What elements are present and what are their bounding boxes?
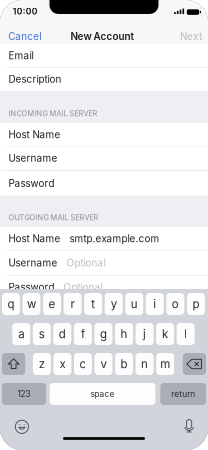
- staticText: d: [59, 327, 66, 341]
- button[interactable]: u: [125, 293, 143, 315]
- staticText: g: [100, 327, 107, 341]
- button[interactable]: h: [115, 323, 133, 345]
- staticText: New Account: [70, 30, 133, 42]
- button[interactable]: Shift: [2, 353, 25, 375]
- staticText: z: [39, 357, 45, 371]
- button[interactable]: e: [43, 293, 61, 315]
- staticText: b: [120, 357, 127, 371]
- staticText: v: [100, 357, 106, 371]
- staticText: Next: [180, 30, 202, 42]
- staticText: Username: [8, 257, 57, 269]
- button[interactable]: p: [187, 293, 205, 315]
- button[interactable]: return: [160, 383, 206, 405]
- button[interactable]: Emoji keyboard: [11, 416, 33, 438]
- staticText: Username: [8, 152, 57, 164]
- button[interactable]: Host Name: [0, 227, 208, 250]
- staticText: h: [120, 327, 127, 341]
- staticText: r: [71, 297, 75, 311]
- button[interactable]: w: [23, 293, 40, 315]
- button[interactable]: Next: [173, 25, 208, 48]
- button[interactable]: Cancel: [0, 25, 48, 48]
- staticText: smtp.example.com: [69, 233, 159, 244]
- staticText: OUTGOING MAIL SERVER: [8, 213, 98, 222]
- staticText: Password: [8, 177, 54, 189]
- staticText: k: [162, 327, 168, 341]
- staticText: m: [160, 357, 170, 371]
- staticText: Password: [8, 281, 54, 293]
- button[interactable]: o: [166, 293, 184, 315]
- staticText: i: [153, 297, 156, 311]
- button[interactable]: l: [177, 323, 195, 345]
- button[interactable]: 123: [2, 383, 46, 405]
- staticText: s: [39, 327, 45, 341]
- button[interactable]: s: [33, 323, 51, 345]
- button[interactable]: x: [53, 353, 71, 375]
- button[interactable]: q: [2, 293, 20, 315]
- button[interactable]: Host Name: [0, 123, 208, 146]
- staticText: c: [79, 357, 86, 371]
- staticText: j: [143, 327, 146, 341]
- staticText: w: [27, 297, 36, 311]
- button[interactable]: y: [105, 293, 123, 315]
- button[interactable]: m: [156, 353, 174, 375]
- button[interactable]: Dictation: [178, 416, 200, 438]
- button[interactable]: n: [136, 353, 154, 375]
- button[interactable]: f: [74, 323, 92, 345]
- staticText: Email: [8, 50, 33, 61]
- staticText: space: [90, 389, 114, 399]
- button[interactable]: j: [136, 323, 153, 345]
- staticText: Description: [8, 73, 61, 85]
- staticText: Cancel: [8, 30, 41, 42]
- button[interactable]: g: [94, 323, 112, 345]
- button[interactable]: t: [84, 293, 102, 315]
- staticText: return: [171, 389, 195, 399]
- staticText: Optional: [63, 281, 102, 293]
- button[interactable]: i: [146, 293, 164, 315]
- staticText: 10:00: [13, 6, 38, 16]
- staticText: 123: [17, 389, 30, 399]
- staticText: Host Name: [8, 233, 60, 244]
- button[interactable]: Delete: [183, 353, 206, 375]
- staticText: Host Name: [8, 129, 60, 140]
- staticText: x: [59, 357, 65, 371]
- staticText: l: [184, 327, 187, 341]
- button[interactable]: Username: [0, 250, 208, 275]
- staticText: n: [141, 357, 148, 371]
- button[interactable]: b: [115, 353, 133, 375]
- button[interactable]: Password: [0, 171, 208, 195]
- staticText: f: [81, 327, 85, 341]
- button[interactable]: k: [156, 323, 174, 345]
- button[interactable]: z: [33, 353, 51, 375]
- staticText: u: [131, 297, 138, 311]
- button[interactable]: r: [64, 293, 82, 315]
- staticText: a: [18, 327, 24, 341]
- staticText: e: [48, 297, 55, 311]
- staticText: o: [172, 297, 179, 311]
- button[interactable]: d: [53, 323, 71, 345]
- button[interactable]: Username: [0, 146, 208, 170]
- button[interactable]: a: [12, 323, 30, 345]
- button[interactable]: space: [50, 383, 155, 405]
- button[interactable]: Description: [0, 67, 208, 91]
- button[interactable]: Password: [0, 275, 208, 299]
- button[interactable]: v: [95, 353, 112, 375]
- staticText: Optional: [66, 257, 105, 269]
- staticText: t: [91, 297, 95, 311]
- button[interactable]: Email: [0, 44, 208, 67]
- staticText: y: [111, 297, 117, 311]
- button[interactable]: c: [74, 353, 92, 375]
- staticText: q: [7, 297, 14, 311]
- staticText: p: [192, 297, 199, 311]
- staticText: INCOMING MAIL SERVER: [8, 109, 97, 118]
